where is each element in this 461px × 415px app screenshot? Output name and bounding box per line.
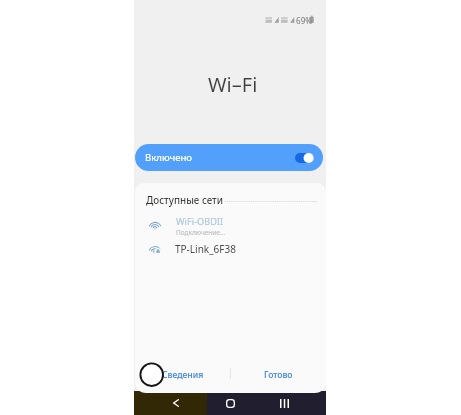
button[interactable]: WiFi-OBDII (135, 211, 326, 236)
button[interactable]: Recent apps (271, 391, 297, 415)
staticText: Доступные сети (146, 194, 224, 207)
staticText: WiFi-OBDII (176, 215, 224, 228)
button[interactable]: Back (163, 391, 189, 415)
staticText: Сведения (162, 369, 204, 381)
staticText: Включено (145, 151, 193, 164)
staticText: Готово (264, 369, 293, 381)
button[interactable]: TP-Link_6F38 (135, 238, 326, 260)
button[interactable]: Сведения (135, 363, 230, 387)
staticText: TP-Link_6F38 (175, 242, 236, 256)
button[interactable]: Готово (230, 363, 326, 387)
staticText: 69% (296, 15, 313, 26)
button[interactable]: Home (217, 391, 243, 415)
staticText: Подключение... (176, 228, 226, 237)
button[interactable]: Включено (135, 144, 323, 171)
staticText: Wi–Fi (208, 71, 258, 98)
